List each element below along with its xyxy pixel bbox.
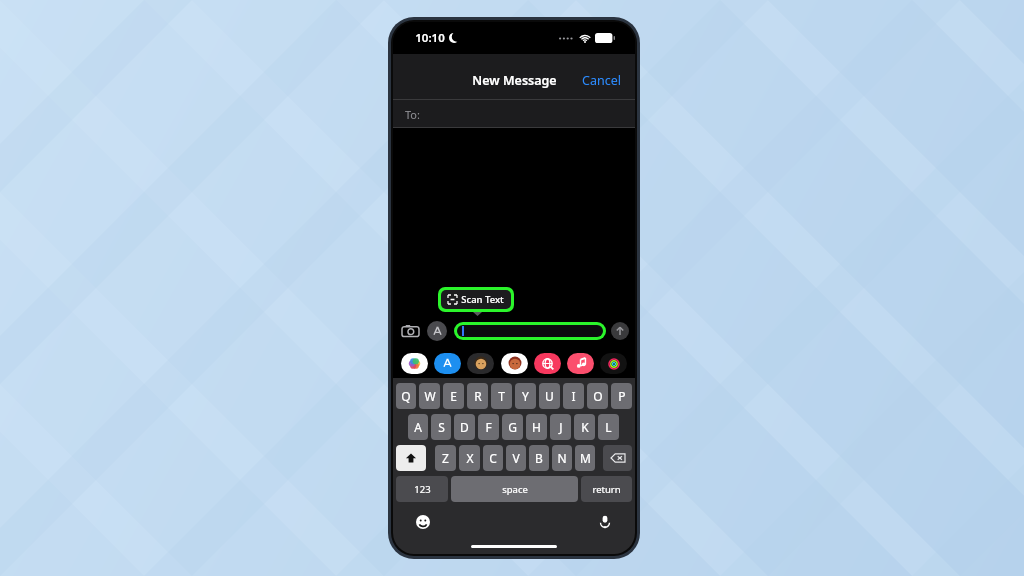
button[interactable]: M (575, 445, 595, 471)
button[interactable]: Shift (396, 445, 426, 471)
button[interactable]: O (587, 383, 608, 409)
staticText: New Message (472, 72, 557, 89)
button[interactable]: R (467, 383, 488, 409)
button[interactable]: Camera (399, 320, 421, 342)
staticText: G (508, 419, 517, 435)
staticText: U (545, 388, 554, 404)
button[interactable]: Z (435, 445, 456, 471)
staticText: 123 (414, 483, 431, 496)
staticText: 10:10 (415, 30, 445, 46)
staticText: Cancel (582, 72, 621, 89)
staticText: Q (401, 388, 411, 404)
staticText: T (498, 388, 505, 404)
button[interactable]: J (550, 414, 571, 440)
button[interactable]: T (491, 383, 512, 409)
staticText: A (414, 419, 422, 435)
staticText: space (502, 483, 528, 496)
button[interactable]: I (563, 383, 584, 409)
button[interactable]: H (526, 414, 547, 440)
staticText: F (485, 419, 492, 435)
button[interactable]: A (408, 414, 428, 440)
staticText: D (460, 419, 469, 435)
staticText: M (580, 450, 591, 466)
button[interactable]: E (443, 383, 464, 409)
button[interactable]: X (459, 445, 480, 471)
button[interactable]: App 1 (434, 353, 461, 374)
button[interactable]: V (506, 445, 526, 471)
button[interactable]: P (611, 383, 632, 409)
button[interactable] (457, 325, 603, 337)
staticText: H (532, 419, 541, 435)
button[interactable]: U (539, 383, 560, 409)
staticText: Scan Text (461, 293, 504, 306)
button[interactable]: Y (515, 383, 536, 409)
button[interactable]: App 4 (534, 353, 561, 374)
button[interactable]: Emoji (415, 514, 431, 530)
button[interactable]: Send (611, 322, 629, 340)
staticText: Y (522, 388, 529, 404)
button[interactable]: G (502, 414, 523, 440)
staticText: K (581, 419, 589, 435)
staticText: E (450, 388, 457, 404)
staticText: Z (442, 450, 449, 466)
button[interactable]: App 3 (501, 353, 528, 374)
staticText: P (618, 388, 626, 404)
button[interactable]: L (598, 414, 619, 440)
button[interactable]: S (431, 414, 451, 440)
button[interactable]: App 0 (401, 353, 428, 374)
staticText: W (424, 388, 436, 404)
button[interactable]: K (574, 414, 595, 440)
button[interactable]: W (419, 383, 440, 409)
button[interactable]: App 5 (567, 353, 594, 374)
staticText: S (438, 419, 445, 435)
button[interactable]: 123 (396, 476, 448, 502)
button[interactable]: space (451, 476, 578, 502)
staticText: return (592, 483, 621, 496)
button[interactable]: Backspace (603, 445, 632, 471)
staticText: O (593, 388, 603, 404)
staticText: N (557, 450, 567, 466)
staticText: C (489, 450, 497, 466)
staticText: I (571, 388, 576, 404)
button[interactable]: App 6 (600, 353, 627, 374)
button[interactable]: D (454, 414, 475, 440)
staticText: To: (405, 107, 420, 122)
button[interactable]: B (529, 445, 549, 471)
button[interactable]: To: (393, 100, 635, 128)
button[interactable]: Q (396, 383, 416, 409)
staticText: X (466, 450, 474, 466)
button[interactable]: Scan Text (441, 290, 511, 309)
staticText: B (535, 450, 543, 466)
button[interactable]: F (478, 414, 499, 440)
button[interactable]: Dictation (597, 514, 613, 530)
staticText: V (512, 450, 520, 466)
button[interactable]: Cancel (568, 66, 635, 95)
button[interactable]: N (552, 445, 572, 471)
button[interactable]: C (483, 445, 503, 471)
button[interactable]: return (581, 476, 632, 502)
staticText: J (559, 419, 563, 435)
staticText: R (474, 388, 482, 404)
button[interactable]: App 2 (467, 353, 494, 374)
button[interactable]: App Store (427, 321, 447, 341)
staticText: L (605, 419, 612, 435)
